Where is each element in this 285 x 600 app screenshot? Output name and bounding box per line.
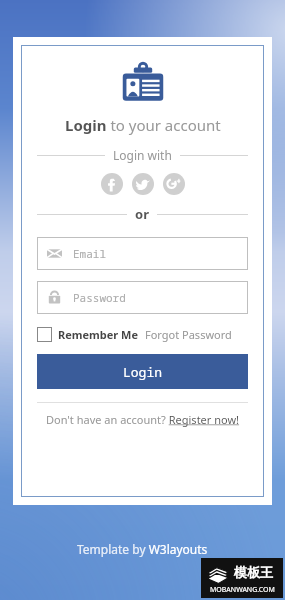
button[interactable]: Remember Me [37,327,139,342]
staticText: Password [73,290,126,305]
staticText: Login with [113,147,172,163]
button[interactable]: Login with Facebook [101,173,123,195]
staticText: Forgot Password [145,327,232,342]
staticText: Login [123,363,163,381]
button[interactable]: Password [37,281,248,314]
button[interactable]: Login with Twitter [132,173,154,195]
staticText: MOBANWANG.COM [210,585,275,595]
staticText: Template by W3layouts [77,541,208,557]
button[interactable]: Login [37,354,248,389]
button[interactable]: Email [37,237,248,270]
button[interactable]: Login with Google Plus [163,173,185,195]
staticText: 模板王 [234,564,273,580]
staticText: Email [73,246,106,261]
button[interactable]: Forgot Password [145,327,232,342]
staticText: Login to your account [65,115,221,135]
button[interactable]: Don't have an account? Register now! [46,412,240,427]
staticText: or [135,205,149,223]
staticText: Remember Me [58,327,139,342]
